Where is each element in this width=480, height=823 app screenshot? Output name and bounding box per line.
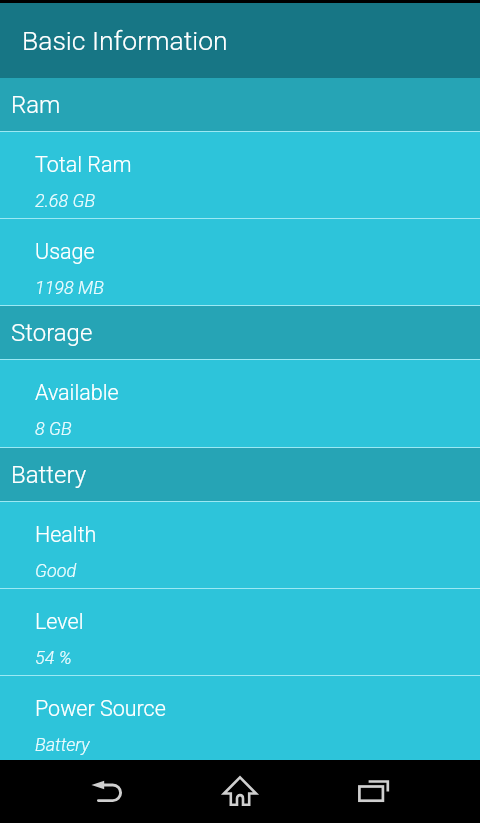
staticText: Ram — [11, 91, 61, 119]
button[interactable]: Back — [0, 760, 160, 823]
button[interactable]: Basic Information — [0, 3, 480, 78]
button[interactable]: Battery — [0, 448, 480, 501]
button[interactable]: Home — [160, 760, 320, 823]
button[interactable]: Usage — [0, 219, 480, 305]
button[interactable]: Ram — [0, 78, 480, 131]
button[interactable]: Health — [0, 502, 480, 588]
button[interactable]: Total Ram — [0, 132, 480, 218]
staticText: Usage — [35, 239, 95, 264]
staticText: Power Source — [35, 696, 166, 721]
staticText: Basic Information — [22, 25, 228, 56]
staticText: Battery — [11, 461, 87, 489]
button[interactable]: Level — [0, 589, 480, 675]
staticText: Good — [35, 560, 77, 581]
button[interactable]: Power Source — [0, 676, 480, 760]
button[interactable]: Storage — [0, 306, 480, 359]
staticText: 2.68 GB — [35, 190, 96, 211]
staticText: Storage — [11, 319, 93, 347]
staticText: 54 % — [35, 647, 72, 668]
button[interactable]: Recent apps — [320, 760, 480, 823]
staticText: Level — [35, 609, 84, 634]
staticText: 1198 MB — [35, 277, 104, 298]
staticText: Health — [35, 522, 97, 547]
button[interactable]: Available — [0, 360, 480, 447]
staticText: Battery — [35, 734, 90, 755]
staticText: 8 GB — [35, 418, 72, 439]
staticText: Total Ram — [35, 152, 132, 177]
staticText: Available — [35, 380, 119, 405]
